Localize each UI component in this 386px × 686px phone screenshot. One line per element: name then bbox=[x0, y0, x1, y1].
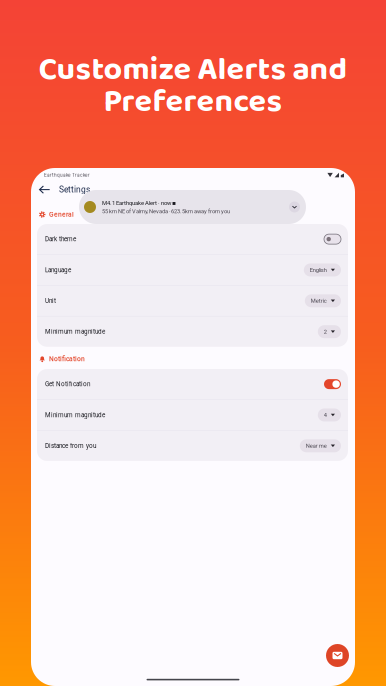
staticText: 55 km NE of Valmy, Nevada · 623.5km away… bbox=[102, 208, 230, 214]
button[interactable]: M4.1 Earthquake Alert · now ▪ bbox=[79, 190, 306, 224]
button[interactable]: Dark theme bbox=[37, 224, 348, 254]
staticText: English bbox=[310, 267, 327, 273]
staticText: 4 bbox=[324, 412, 327, 418]
button[interactable]: Distance from you bbox=[37, 431, 348, 461]
staticText: 2 bbox=[324, 328, 327, 335]
staticText: M4.1 Earthquake Alert · now ▪ bbox=[102, 199, 176, 206]
staticText: Near me bbox=[306, 442, 327, 449]
button[interactable]: Back bbox=[36, 181, 53, 198]
button[interactable]: Minimum magnitude bbox=[37, 400, 348, 430]
staticText: Minimum magnitude bbox=[45, 411, 105, 419]
staticText: Distance from you bbox=[45, 442, 96, 449]
button[interactable]: Compose mail bbox=[326, 644, 349, 667]
staticText: Settings bbox=[59, 185, 90, 194]
staticText: Preferences bbox=[103, 76, 282, 128]
staticText: Metric bbox=[311, 297, 327, 304]
staticText: Get Notification bbox=[45, 380, 90, 388]
button[interactable]: Unit bbox=[37, 286, 348, 316]
staticText: Minimum magnitude bbox=[45, 328, 105, 335]
staticText: General bbox=[49, 211, 74, 218]
staticText: Notification bbox=[49, 355, 85, 363]
button[interactable]: Language bbox=[37, 255, 348, 285]
staticText: Customize Alerts and bbox=[38, 44, 347, 96]
button[interactable]: Minimum magnitude bbox=[37, 317, 348, 347]
staticText: Language bbox=[45, 266, 71, 274]
staticText: Earthquake Tracker bbox=[44, 172, 90, 178]
button[interactable]: Get Notification bbox=[37, 369, 348, 399]
staticText: Dark theme bbox=[45, 235, 76, 243]
staticText: Unit bbox=[45, 297, 56, 304]
